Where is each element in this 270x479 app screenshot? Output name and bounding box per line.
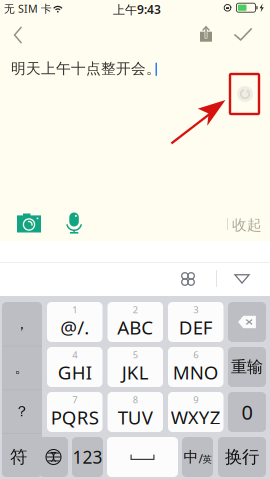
button[interactable]: Camera xyxy=(14,211,44,235)
button[interactable]: Voice input xyxy=(61,211,87,235)
button[interactable]: 。 xyxy=(2,346,42,389)
staticText: 符 xyxy=(10,446,27,468)
staticText: PQRS xyxy=(51,405,99,430)
staticText: ， xyxy=(14,315,29,333)
staticText: 123 xyxy=(72,445,102,468)
button[interactable]: Redo xyxy=(237,86,253,102)
button[interactable]: ！ xyxy=(2,433,42,477)
staticText: / xyxy=(198,450,202,466)
staticText: 无 SIM 卡 xyxy=(4,1,52,16)
button[interactable]: 符 xyxy=(2,437,35,477)
staticText: 0 xyxy=(241,399,252,425)
button[interactable]: 6 xyxy=(168,347,223,387)
button[interactable]: 中 xyxy=(182,437,213,477)
staticText: MNO xyxy=(173,360,219,385)
staticText: 上午9:43 xyxy=(113,1,161,17)
staticText: ABC xyxy=(117,315,153,340)
staticText: 3 xyxy=(193,303,198,316)
staticText: 1 xyxy=(72,303,77,316)
staticText: 换行 xyxy=(225,446,259,468)
button[interactable]: Share xyxy=(191,20,221,48)
button[interactable] xyxy=(228,302,266,342)
button[interactable]: 9 xyxy=(168,392,223,432)
button[interactable]: Hide keyboard xyxy=(225,266,259,292)
button[interactable]: 5 xyxy=(107,347,163,387)
button[interactable]: Done xyxy=(226,20,260,48)
staticText: 5 xyxy=(133,348,138,361)
staticText: 8 xyxy=(133,393,138,406)
staticText: WXYZ xyxy=(171,405,221,430)
button[interactable] xyxy=(39,437,68,477)
staticText: TUV xyxy=(118,405,153,430)
button[interactable]: ？ xyxy=(2,389,42,433)
button[interactable]: 换行 xyxy=(218,437,266,477)
staticText: 2 xyxy=(133,303,138,316)
staticText: 中 xyxy=(183,448,198,466)
button[interactable]: 8 xyxy=(107,392,163,432)
staticText: ！ xyxy=(14,446,29,464)
staticText: 6 xyxy=(193,348,198,361)
staticText: 7 xyxy=(72,393,77,406)
staticText: DEF xyxy=(179,315,213,340)
staticText: 明天上午十点整开会。 xyxy=(11,59,161,77)
button[interactable]: 2 xyxy=(107,302,163,342)
button[interactable]: Emoji keyboard xyxy=(171,266,205,292)
staticText: 英 xyxy=(202,454,211,465)
button[interactable]: Back xyxy=(0,21,36,49)
staticText: JKL xyxy=(122,360,149,385)
button[interactable]: 7 xyxy=(47,392,102,432)
staticText: 4 xyxy=(72,348,77,361)
button[interactable]: 0 xyxy=(228,392,266,432)
staticText: 9 xyxy=(193,393,198,406)
staticText: 收起 xyxy=(232,216,262,234)
button[interactable]: 1 xyxy=(47,302,102,342)
staticText: 重输 xyxy=(231,357,263,377)
button[interactable]: 3 xyxy=(168,302,223,342)
staticText: GHI xyxy=(58,360,92,385)
staticText: ？ xyxy=(14,402,29,420)
staticText: @/. xyxy=(60,315,89,340)
button[interactable]: 收起 xyxy=(230,215,264,235)
button[interactable]: 4 xyxy=(47,347,102,387)
button[interactable]: 重输 xyxy=(228,347,266,387)
button[interactable]: ， xyxy=(2,302,42,346)
button[interactable]: 123 xyxy=(72,437,103,477)
staticText: 。 xyxy=(14,358,29,376)
button[interactable] xyxy=(107,437,178,477)
